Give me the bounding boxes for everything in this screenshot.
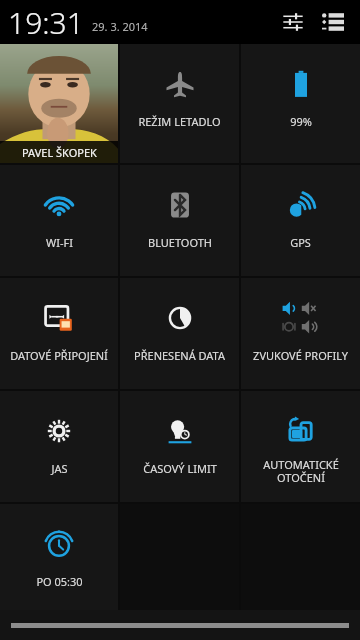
staticText: PŘENESENÁ DATA [134, 348, 225, 363]
button[interactable]: Airplane mode [120, 44, 239, 163]
staticText: JAS [51, 461, 68, 476]
button[interactable]: Mobile data [0, 278, 118, 389]
staticText: 19:31 [8, 2, 84, 43]
staticText: GPS [290, 235, 311, 250]
button[interactable]: Brightness [0, 391, 118, 502]
staticText: WI-FI [46, 235, 73, 250]
button[interactable]: Bluetooth [120, 165, 239, 276]
staticText: DATOVÉ PŘIPOJENÍ [10, 348, 108, 363]
staticText: ČASOVÝ LIMIT [143, 461, 217, 476]
staticText: REŽIM LETADLO [138, 114, 221, 129]
button[interactable]: Settings sliders [276, 5, 310, 39]
button[interactable]: Battery 99 percent [241, 44, 360, 163]
staticText: PO 05:30 [36, 574, 83, 589]
button[interactable]: Sound profiles [241, 278, 360, 389]
button[interactable]: Wi-Fi [0, 165, 118, 276]
button[interactable]: User Pavel Škopek [0, 44, 118, 163]
staticText: ZVUKOVÉ PROFILY [253, 348, 348, 363]
button[interactable]: Data usage [120, 278, 239, 389]
staticText: 29. 3. 2014 [92, 19, 148, 34]
staticText: PAVEL ŠKOPEK [22, 145, 97, 160]
button[interactable]: Auto rotate [241, 391, 360, 502]
button[interactable]: Close quick settings [0, 610, 360, 640]
button[interactable]: GPS [241, 165, 360, 276]
staticText: AUTOMATICKÉ OTOČENÍ [263, 457, 339, 485]
staticText: BLUETOOTH [148, 235, 212, 250]
staticText: 99% [290, 114, 312, 129]
button[interactable]: Screen timeout [120, 391, 239, 502]
button[interactable]: Notifications list [316, 5, 350, 39]
button[interactable]: Alarm Monday 05:30 [0, 504, 118, 610]
